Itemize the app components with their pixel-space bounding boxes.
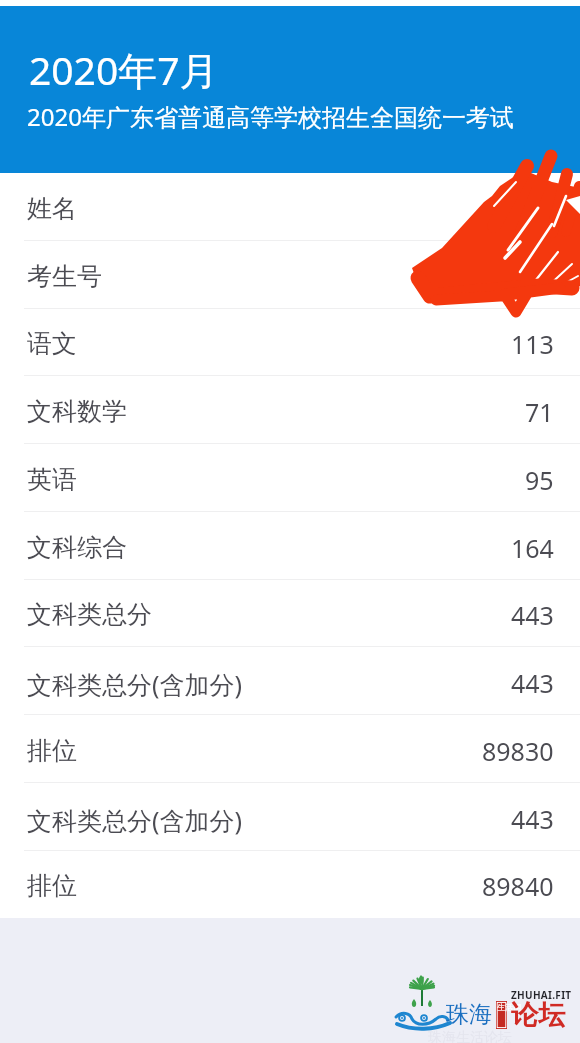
button[interactable]: 文科类总分 <box>0 579 580 647</box>
staticText: 443 <box>511 598 554 632</box>
staticText: 2020年广东省普通高等学校招生全国统一考试 <box>27 100 514 133</box>
button[interactable]: 文科类总分(含加分) <box>0 783 580 851</box>
staticText: 文科数学 <box>27 396 127 427</box>
staticText: 95 <box>525 463 554 497</box>
staticText: 珠海 <box>446 1000 492 1029</box>
staticText: 71 <box>525 395 554 429</box>
button[interactable]: 文科数学 <box>0 376 580 444</box>
other: 珠海论坛 ZHUHAI.FIT watermark <box>394 972 574 1042</box>
button[interactable]: 姓名 <box>0 173 580 241</box>
staticText: 113 <box>511 327 554 361</box>
staticText: 珠海生活论坛 <box>428 1029 512 1043</box>
button[interactable]: 语文 <box>0 308 580 376</box>
staticText: 89840 <box>482 869 554 903</box>
staticText: 文科类总分 <box>27 599 152 630</box>
staticText: 443 <box>511 802 554 836</box>
staticText: 443 <box>511 666 554 700</box>
button[interactable]: 文科类总分(含加分) <box>0 647 580 715</box>
button[interactable]: 排位 <box>0 850 580 918</box>
staticText: 164 <box>511 531 554 565</box>
staticText: 文科类总分(含加分) <box>27 667 243 701</box>
staticText: ZHUHAI.FIT <box>511 988 572 1002</box>
staticText: 文科综合 <box>27 532 127 563</box>
button[interactable]: 考生号 <box>0 241 580 309</box>
staticText: 生活网 <box>497 1002 521 1012</box>
button[interactable]: 排位 <box>0 715 580 783</box>
staticText: 文科类总分(含加分) <box>27 803 243 837</box>
button[interactable]: 英语 <box>0 444 580 512</box>
staticText: 英语 <box>27 464 77 495</box>
staticText: 排位 <box>27 870 77 901</box>
staticText: 2020年7月 <box>29 43 219 96</box>
staticText: 排位 <box>27 735 77 766</box>
staticText: 考生号 <box>27 261 102 292</box>
staticText: 姓名 <box>27 193 77 224</box>
staticText: 论坛 <box>511 998 565 1032</box>
staticText: 语文 <box>27 328 77 359</box>
button[interactable]: 文科综合 <box>0 512 580 580</box>
staticText: 89830 <box>482 734 554 768</box>
